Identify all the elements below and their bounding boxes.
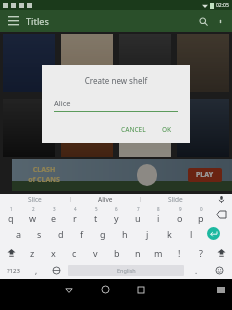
staticText: u bbox=[135, 212, 141, 224]
button[interactable]: English bbox=[68, 265, 184, 276]
staticText: z bbox=[30, 247, 35, 259]
staticText: 8 bbox=[157, 206, 160, 212]
button[interactable]: c bbox=[64, 243, 85, 262]
staticText: e bbox=[51, 212, 57, 224]
button[interactable]: 5 bbox=[85, 205, 106, 224]
staticText: CANCEL bbox=[121, 125, 146, 134]
button[interactable]: Change language bbox=[46, 262, 66, 279]
staticText: PLAY bbox=[196, 170, 214, 180]
button[interactable]: b bbox=[106, 243, 127, 262]
button[interactable]: ? bbox=[190, 243, 211, 262]
button[interactable]: Shift bbox=[211, 243, 232, 262]
button[interactable]: ! bbox=[169, 243, 190, 262]
staticText: 9 bbox=[179, 206, 182, 212]
button[interactable]: f bbox=[71, 224, 92, 243]
button[interactable]: Slide bbox=[140, 194, 210, 205]
button[interactable]: Back bbox=[51, 279, 87, 300]
button[interactable]: CANCEL bbox=[115, 122, 152, 137]
staticText: c bbox=[72, 247, 77, 259]
button[interactable]: CLASH of CLANS bbox=[12, 159, 232, 191]
staticText: l bbox=[190, 228, 193, 240]
button[interactable]: n bbox=[127, 243, 148, 262]
button[interactable]: , bbox=[26, 262, 46, 279]
button[interactable] bbox=[3, 99, 55, 157]
staticText: y bbox=[114, 212, 119, 224]
staticText: k bbox=[167, 228, 172, 240]
button[interactable]: Home bbox=[87, 279, 123, 300]
button[interactable]: g bbox=[92, 224, 114, 243]
button[interactable]: Voice input bbox=[210, 194, 232, 205]
button[interactable]: x bbox=[43, 243, 64, 262]
staticText: f bbox=[80, 228, 84, 240]
staticText: OK bbox=[162, 125, 172, 134]
staticText: 7 bbox=[137, 206, 140, 212]
staticText: m bbox=[154, 247, 163, 259]
button[interactable]: Search bbox=[194, 12, 212, 30]
staticText: ? bbox=[199, 247, 203, 259]
staticText: d bbox=[58, 228, 64, 240]
button[interactable]: 3 bbox=[43, 205, 64, 224]
button[interactable]: Open navigation drawer bbox=[5, 13, 21, 29]
button[interactable] bbox=[61, 99, 113, 157]
staticText: v bbox=[93, 247, 98, 259]
button[interactable]: d bbox=[50, 224, 71, 243]
staticText: o bbox=[177, 212, 183, 224]
button[interactable]: l bbox=[180, 224, 202, 243]
staticText: , bbox=[35, 265, 38, 276]
staticText: 2 bbox=[32, 206, 35, 212]
staticText: Titles bbox=[26, 15, 49, 27]
button[interactable] bbox=[177, 99, 229, 157]
button[interactable]: a bbox=[8, 224, 29, 243]
staticText: s bbox=[37, 228, 42, 240]
button[interactable] bbox=[3, 34, 55, 92]
staticText: CLASH of CLANS bbox=[28, 165, 60, 185]
button[interactable]: v bbox=[85, 243, 106, 262]
button[interactable]: Backspace bbox=[211, 205, 232, 224]
button[interactable]: 6 bbox=[106, 205, 127, 224]
button[interactable]: z bbox=[22, 243, 43, 262]
button[interactable]: PLAY bbox=[188, 168, 222, 182]
button[interactable]: OK bbox=[156, 122, 178, 137]
button[interactable] bbox=[119, 34, 171, 92]
button[interactable]: Hide keyboard bbox=[210, 279, 232, 300]
button[interactable]: Alive bbox=[70, 194, 140, 205]
button[interactable]: 2 bbox=[22, 205, 43, 224]
staticText: 4 bbox=[74, 206, 77, 212]
button[interactable] bbox=[61, 34, 113, 92]
button[interactable]: Slice bbox=[0, 194, 70, 205]
staticText: Slide bbox=[168, 195, 183, 204]
staticText: b bbox=[114, 247, 120, 259]
button[interactable]: j bbox=[136, 224, 158, 243]
staticText: 1 bbox=[10, 206, 13, 212]
button[interactable]: Shift bbox=[0, 243, 22, 262]
button[interactable]: 1 bbox=[0, 205, 22, 224]
button[interactable]: k bbox=[158, 224, 180, 243]
button[interactable]: Enter bbox=[202, 224, 224, 243]
staticText: t bbox=[94, 212, 98, 224]
staticText: 02:05 bbox=[216, 2, 229, 9]
staticText: Alice bbox=[54, 98, 71, 108]
button[interactable]: 4 bbox=[64, 205, 85, 224]
button[interactable]: More options bbox=[212, 13, 228, 29]
button[interactable]: s bbox=[29, 224, 50, 243]
button[interactable]: 7 bbox=[127, 205, 148, 224]
staticText: 6 bbox=[115, 206, 118, 212]
button[interactable]: ?123 bbox=[0, 262, 26, 279]
button[interactable]: Recent apps bbox=[123, 279, 159, 300]
button[interactable]: Emoji bbox=[206, 262, 232, 279]
button[interactable] bbox=[177, 34, 229, 92]
button[interactable] bbox=[119, 99, 171, 157]
staticText: . bbox=[195, 265, 198, 276]
staticText: g bbox=[100, 228, 106, 240]
staticText: ?123 bbox=[7, 267, 20, 275]
button[interactable]: 8 bbox=[148, 205, 169, 224]
button[interactable]: 9 bbox=[169, 205, 190, 224]
staticText: Create new shelf bbox=[54, 75, 178, 86]
staticText: 3 bbox=[53, 206, 56, 212]
button[interactable]: m bbox=[148, 243, 169, 262]
staticText: ! bbox=[178, 247, 181, 259]
button[interactable]: h bbox=[114, 224, 136, 243]
staticText: h bbox=[122, 228, 128, 240]
button[interactable]: 0 bbox=[190, 205, 211, 224]
button[interactable]: . bbox=[186, 262, 206, 279]
